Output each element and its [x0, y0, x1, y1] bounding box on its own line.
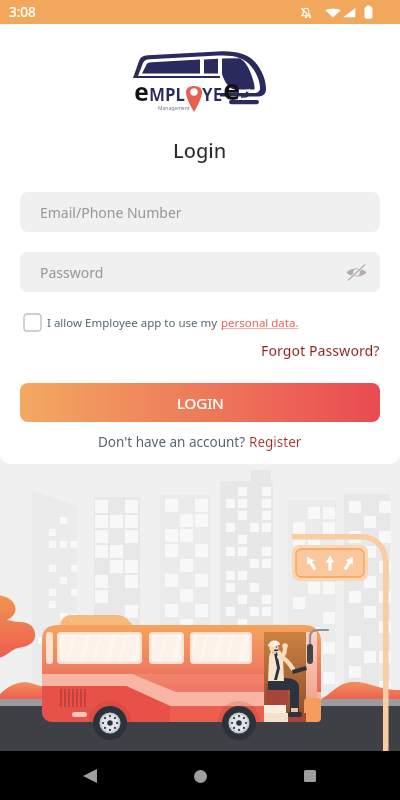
- staticText: Password: [40, 263, 104, 282]
- staticText: e: [134, 74, 149, 108]
- staticText: Forgot Password?: [261, 341, 380, 360]
- staticText: Register: [249, 433, 302, 451]
- button[interactable]: LOGIN: [20, 383, 380, 422]
- staticText: Management: [158, 105, 190, 112]
- staticText: I allow Employee app to use my: [47, 315, 221, 331]
- staticText: personal data.: [221, 315, 299, 331]
- staticText: Email/Phone Number: [40, 203, 182, 222]
- staticText: 3:08: [9, 3, 36, 21]
- button[interactable]: Register: [249, 433, 302, 451]
- button[interactable]: Recents: [290, 756, 330, 796]
- button[interactable]: I allow Employee app to use my: [24, 314, 299, 331]
- button[interactable]: Home: [180, 756, 220, 796]
- staticText: Login: [173, 137, 227, 164]
- button[interactable]: Email/Phone Number: [20, 192, 380, 232]
- button[interactable]: Forgot Password?: [261, 341, 380, 360]
- button[interactable]: Show password: [343, 259, 369, 285]
- button[interactable]: Password: [20, 252, 380, 292]
- staticText: MPL: [149, 83, 186, 106]
- button[interactable]: Back: [70, 756, 110, 796]
- staticText: e: [223, 69, 241, 108]
- staticText: LOGIN: [177, 393, 224, 413]
- staticText: YE: [202, 83, 223, 106]
- staticText: Don't have an account?: [98, 433, 249, 451]
